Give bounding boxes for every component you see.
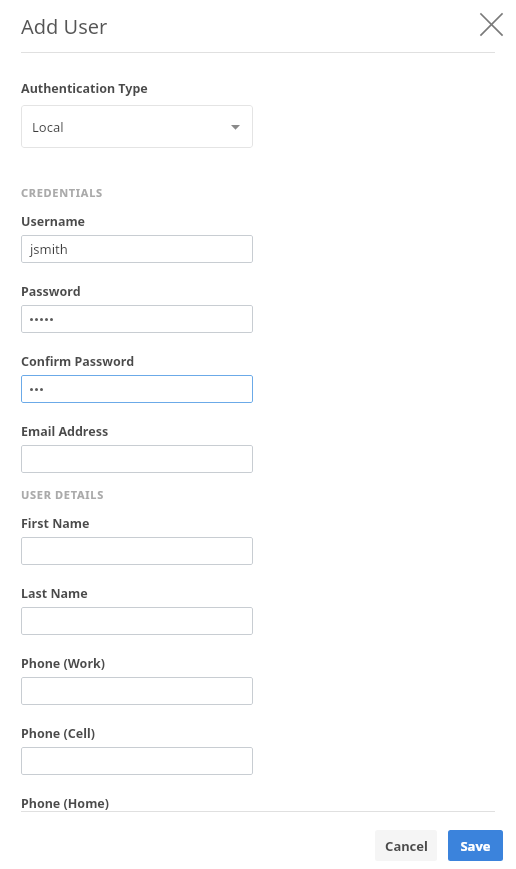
staticText: Local	[32, 118, 64, 136]
button[interactable]	[21, 677, 253, 705]
button[interactable]	[21, 747, 253, 775]
staticText: First Name	[21, 515, 90, 532]
button[interactable]	[21, 445, 253, 473]
staticText: Last Name	[21, 585, 88, 602]
staticText: USER DETAILS	[21, 487, 104, 502]
button[interactable]	[21, 305, 253, 333]
button[interactable]: Save	[448, 830, 503, 861]
staticText: Phone (Work)	[21, 655, 106, 672]
staticText: Password	[21, 283, 81, 300]
button[interactable]: Cancel	[375, 830, 437, 861]
staticText: jsmith	[30, 240, 68, 258]
staticText: Username	[21, 213, 86, 230]
staticText: Phone (Cell)	[21, 725, 95, 742]
button[interactable]: Local	[21, 105, 253, 148]
staticText: Phone (Home)	[21, 795, 110, 812]
staticText: Cancel	[385, 837, 428, 855]
button[interactable]	[21, 537, 253, 565]
button[interactable]: Close	[474, 7, 508, 41]
button[interactable]	[21, 375, 253, 403]
staticText: Email Address	[21, 423, 109, 440]
staticText: Save	[460, 837, 491, 855]
staticText: Add User	[21, 13, 108, 40]
button[interactable]: jsmith	[21, 235, 253, 263]
staticText: Authentication Type	[21, 80, 148, 97]
staticText: CREDENTIALS	[21, 185, 103, 200]
staticText: Confirm Password	[21, 353, 135, 370]
button[interactable]	[21, 607, 253, 635]
